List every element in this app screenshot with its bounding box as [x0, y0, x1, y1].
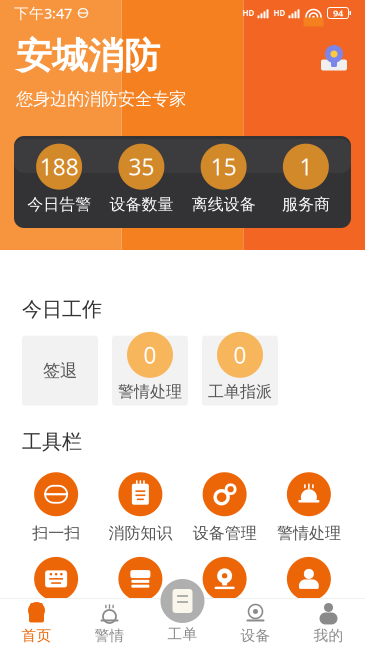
button[interactable]: 我的	[292, 598, 365, 650]
button[interactable]: 地图	[182, 557, 267, 601]
staticText: 今日工作	[22, 297, 102, 322]
button[interactable]: 0	[202, 336, 278, 406]
button[interactable]: 定位	[319, 34, 349, 72]
button[interactable]: 35	[100, 144, 182, 214]
button[interactable]: 工单	[146, 579, 219, 643]
staticText: 警情处理	[118, 382, 182, 401]
staticText: 15	[211, 152, 237, 182]
staticText: 设备	[240, 626, 270, 644]
staticText: 今日告警	[27, 195, 91, 214]
staticText: 188	[40, 152, 79, 182]
staticText: 工单指派	[208, 382, 272, 401]
button[interactable]: 人员	[267, 557, 351, 601]
staticText: 设备数量	[109, 195, 173, 214]
staticText: 我的	[313, 626, 343, 644]
staticText: 工单	[167, 625, 197, 643]
button[interactable]: 警情	[73, 598, 146, 650]
button[interactable]: 188	[18, 144, 100, 214]
staticText: 服务商	[282, 195, 330, 214]
staticText: 警情处理	[277, 523, 341, 543]
button[interactable]: 15	[182, 144, 265, 214]
staticText: 设备管理	[193, 523, 257, 543]
staticText: 签退	[43, 360, 77, 381]
button[interactable]: 设备	[219, 598, 292, 650]
staticText: 下午3:47	[14, 3, 72, 23]
staticText: 工具栏	[22, 430, 82, 454]
staticText: 94	[333, 7, 343, 19]
staticText: 警情	[94, 626, 124, 644]
button[interactable]: 扫一扫	[14, 472, 98, 543]
staticText: 35	[128, 152, 154, 182]
staticText: 0	[143, 340, 156, 370]
button[interactable]: 签退	[22, 336, 98, 406]
staticText: HD	[242, 8, 254, 18]
button[interactable]: 0	[112, 336, 188, 406]
staticText: 首页	[21, 626, 51, 644]
button[interactable]: 警情处理	[267, 472, 351, 543]
staticText: HD	[273, 8, 285, 18]
staticText: 您身边的消防安全专家	[16, 88, 186, 109]
button[interactable]: 首页	[0, 598, 73, 650]
button[interactable]: 设备管理	[182, 472, 267, 543]
staticText: 离线设备	[192, 195, 256, 214]
staticText: 消防知识	[108, 523, 172, 543]
staticText: 1	[299, 152, 312, 182]
staticText: 扫一扫	[32, 523, 80, 543]
button[interactable]: 资料	[98, 557, 182, 601]
staticText: 0	[233, 340, 246, 370]
button[interactable]: 消息	[14, 557, 98, 601]
button[interactable]: 1	[265, 144, 347, 214]
button[interactable]: 消防知识	[98, 472, 182, 543]
staticText: 安城消防	[16, 34, 160, 78]
